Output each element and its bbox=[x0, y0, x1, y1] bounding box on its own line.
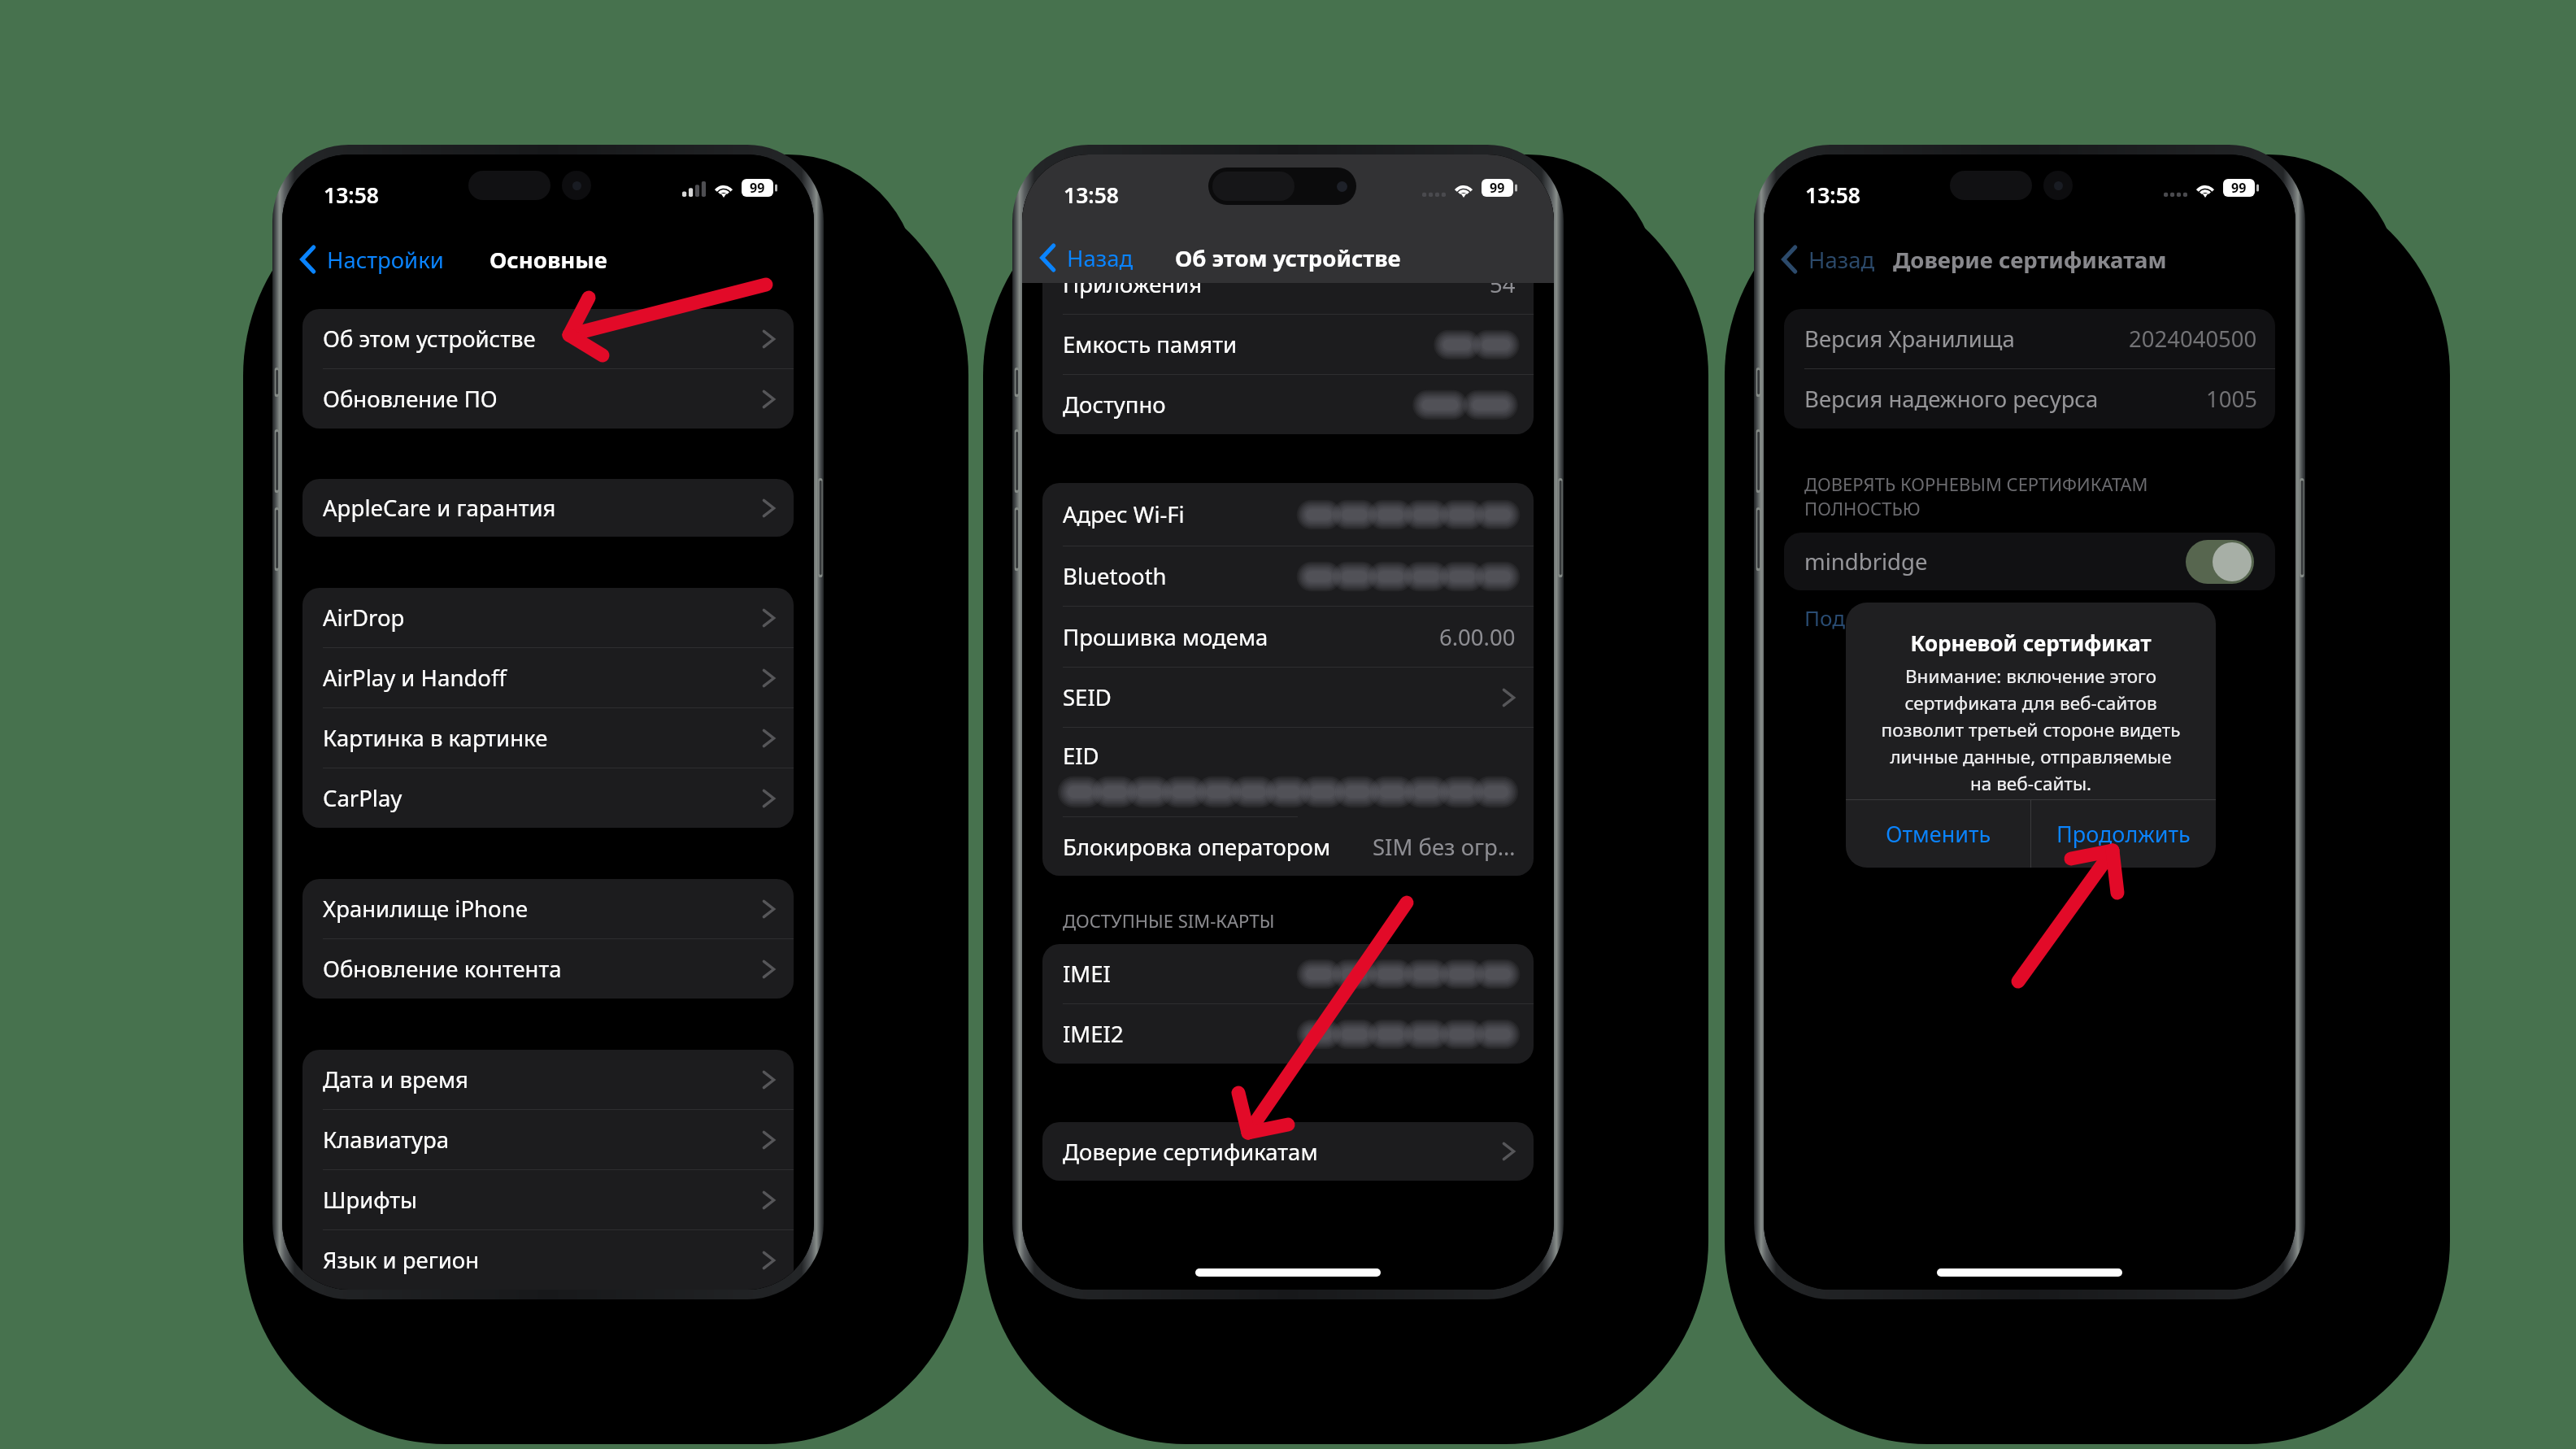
button[interactable]: Блокировка оператором bbox=[1042, 817, 1534, 876]
staticText: AirPlay и Handoff bbox=[323, 663, 507, 693]
staticText: ДОВЕРЯТЬ КОРНЕВЫМ СЕРТИФИКАТАМ ПОЛНОСТЬЮ bbox=[1804, 472, 2148, 521]
staticText: AirDrop bbox=[323, 603, 405, 633]
staticText: Блокировка оператором bbox=[1063, 832, 1331, 862]
staticText: 99 bbox=[2231, 179, 2247, 197]
staticText: Bluetooth bbox=[1063, 561, 1167, 591]
staticText: 13:58 bbox=[1805, 181, 1860, 210]
button[interactable]: AirPlay и Handoff bbox=[302, 648, 794, 707]
button[interactable]: Язык и регион bbox=[302, 1230, 794, 1290]
button[interactable]: Продолжить bbox=[2031, 800, 2216, 868]
button[interactable]: Настройки bbox=[282, 234, 452, 285]
button[interactable]: mindbridge bbox=[1784, 533, 2275, 590]
staticText: 13:58 bbox=[1064, 181, 1119, 210]
staticText: Обновление контента bbox=[323, 954, 562, 984]
staticText: Отменить bbox=[1886, 819, 1991, 849]
staticText: CarPlay bbox=[323, 783, 402, 813]
staticText: Прошивка модема bbox=[1063, 622, 1268, 652]
button[interactable]: Отменить bbox=[1846, 800, 2030, 868]
button[interactable]: IMEI bbox=[1042, 944, 1534, 1003]
staticText: 6.00.00 bbox=[1439, 622, 1516, 652]
button[interactable]: Адрес Wi-Fi bbox=[1042, 483, 1534, 546]
staticText: AppleCare и гарантия bbox=[323, 493, 556, 523]
staticText: 99 bbox=[750, 179, 765, 197]
button[interactable]: Клавиатура bbox=[302, 1110, 794, 1169]
staticText: Версия надежного ресурса bbox=[1804, 384, 2099, 414]
staticText: Адрес Wi-Fi bbox=[1063, 499, 1185, 529]
button[interactable]: Об этом устройстве bbox=[302, 309, 794, 368]
staticText: ДОСТУПНЫЕ SIM-КАРТЫ bbox=[1063, 908, 1275, 933]
staticText: Продолжить bbox=[2056, 819, 2191, 849]
button[interactable]: Шрифты bbox=[302, 1170, 794, 1229]
staticText: Об этом устройстве bbox=[323, 324, 536, 354]
staticText: Корневой сертификат bbox=[1846, 629, 2216, 657]
staticText: Основные bbox=[490, 245, 607, 275]
staticText: IMEI bbox=[1063, 959, 1111, 989]
staticText: Внимание: включение этого сертификата дл… bbox=[1846, 664, 2216, 795]
button[interactable]: Дата и время bbox=[302, 1050, 794, 1109]
button[interactable]: Картинка в картинке bbox=[302, 708, 794, 768]
staticText: Шрифты bbox=[323, 1185, 417, 1215]
staticText: Назад bbox=[1808, 245, 1875, 275]
staticText: Язык и регион bbox=[323, 1245, 480, 1275]
button[interactable]: AirDrop bbox=[302, 588, 794, 647]
staticText: Доступно bbox=[1063, 389, 1166, 420]
staticText: Картинка в картинке bbox=[323, 723, 548, 753]
staticText: Версия Хранилища bbox=[1804, 324, 2015, 354]
staticText: Настройки bbox=[327, 245, 444, 275]
button[interactable]: SEID bbox=[1042, 668, 1534, 727]
staticText: Клавиатура bbox=[323, 1125, 450, 1155]
staticText: Дата и время bbox=[323, 1064, 468, 1094]
staticText: SEID bbox=[1063, 682, 1112, 712]
button[interactable]: Версия Хранилища bbox=[1784, 309, 2275, 368]
staticText: Доверие сертификатам bbox=[1063, 1137, 1318, 1167]
button[interactable]: IMEI2 bbox=[1042, 1004, 1534, 1064]
button[interactable]: Обновление контента bbox=[302, 939, 794, 999]
staticText: 1005 bbox=[2206, 384, 2257, 414]
button[interactable]: EID bbox=[1042, 728, 1534, 816]
button[interactable]: Емкость памяти bbox=[1042, 315, 1534, 374]
staticText: Приложения bbox=[1063, 269, 1203, 299]
staticText: IMEI2 bbox=[1063, 1019, 1124, 1049]
staticText: Доверие сертификатам bbox=[1893, 245, 2167, 275]
staticText: Об этом устройстве bbox=[1175, 243, 1401, 273]
staticText: Под bbox=[1804, 603, 1846, 632]
staticText: Хранилище iPhone bbox=[323, 894, 529, 924]
button[interactable]: Trust mindbridge certificate toggle, on bbox=[2186, 540, 2254, 584]
staticText: mindbridge bbox=[1804, 546, 1928, 577]
staticText: Обновление ПО bbox=[323, 384, 498, 414]
staticText: Назад bbox=[1067, 243, 1134, 273]
staticText: 54 bbox=[1490, 269, 1516, 299]
button[interactable]: Обновление ПО bbox=[302, 369, 794, 429]
button[interactable]: Bluetooth bbox=[1042, 546, 1534, 606]
button[interactable]: Доверие сертификатам bbox=[1042, 1122, 1534, 1181]
button[interactable]: Назад bbox=[1764, 234, 1883, 285]
staticText: 2024040500 bbox=[2129, 324, 2257, 354]
staticText: SIM без огр… bbox=[1373, 832, 1516, 862]
button[interactable]: Доступно bbox=[1042, 375, 1534, 434]
button[interactable]: CarPlay bbox=[302, 768, 794, 828]
button[interactable]: Приложения bbox=[1042, 255, 1534, 314]
staticText: Емкость памяти bbox=[1063, 329, 1238, 359]
button[interactable]: Назад bbox=[1022, 233, 1142, 283]
staticText: 13:58 bbox=[324, 181, 379, 210]
staticText: 99 bbox=[1490, 179, 1505, 197]
button[interactable]: Прошивка модема bbox=[1042, 607, 1534, 667]
button[interactable]: Версия надежного ресурса bbox=[1784, 369, 2275, 429]
button[interactable]: AppleCare и гарантия bbox=[302, 479, 794, 537]
staticText: EID bbox=[1063, 741, 1099, 771]
button[interactable]: Хранилище iPhone bbox=[302, 879, 794, 938]
